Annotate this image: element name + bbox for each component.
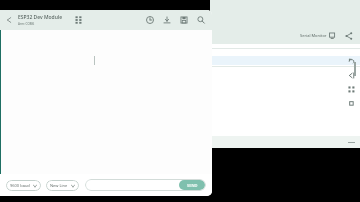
button[interactable]: 9600 baud <box>6 180 41 191</box>
button[interactable]: Serial Monitor <box>298 30 338 41</box>
button[interactable]: Undo <box>346 56 357 67</box>
button[interactable]: Stop <box>346 98 357 109</box>
staticText: Serial Monitor <box>300 33 327 38</box>
staticText: New Line <box>50 183 68 188</box>
button[interactable]: New Line <box>46 180 79 191</box>
button[interactable]: Share <box>343 30 354 41</box>
staticText: 9600 baud <box>10 183 30 188</box>
button[interactable]: Download <box>160 13 174 27</box>
button[interactable]: Layout <box>346 84 357 95</box>
staticText: ESP32 Dev Module <box>18 14 63 21</box>
staticText: SEND <box>187 183 198 188</box>
button[interactable]: History <box>143 13 157 27</box>
button[interactable]: SEND <box>85 179 206 191</box>
button[interactable] <box>210 56 360 65</box>
button[interactable]: ESP32 Dev Module <box>18 14 63 26</box>
button[interactable]: Search <box>194 13 208 27</box>
staticText: Arm: COM6 <box>18 22 35 26</box>
button[interactable]: Back <box>3 14 15 26</box>
button[interactable]: Save <box>177 13 191 27</box>
button[interactable]: Board menu <box>72 13 86 27</box>
button[interactable]: Collapse panel <box>346 70 357 81</box>
button[interactable]: SEND <box>179 180 205 190</box>
